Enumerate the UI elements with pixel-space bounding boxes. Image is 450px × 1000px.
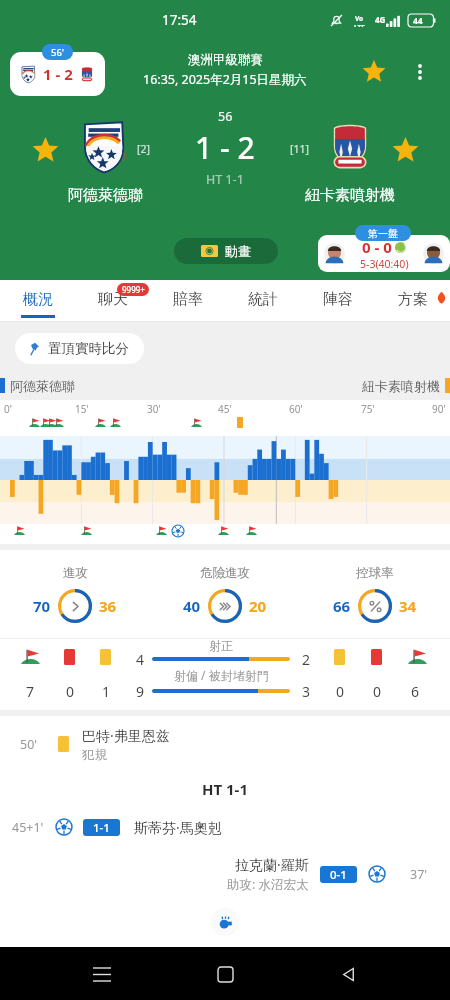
staticText: 4 (136, 650, 145, 669)
button[interactable]: Favourite away team (389, 134, 421, 166)
staticText: 助攻: 水沼宏太 (227, 876, 309, 893)
staticText: 拉克蘭·羅斯 (235, 855, 309, 874)
staticText: HT 1-1 (206, 171, 244, 188)
button[interactable]: 1 - 2 (10, 52, 105, 96)
staticText: 60' (289, 402, 303, 416)
staticText: 0 - 0 (362, 237, 392, 257)
staticText: 0 (373, 682, 382, 701)
staticText: 37' (410, 866, 428, 883)
button[interactable]: 置頂實時比分 (15, 333, 144, 364)
staticText: 阿德萊德聯 (68, 186, 143, 205)
staticText: 16:35, 2025年2月15日星期六 (143, 71, 307, 88)
button[interactable]: 動畫 (174, 238, 278, 264)
staticText: 45' (218, 402, 232, 416)
staticText: 0 (336, 682, 345, 701)
staticText: 概況 (23, 290, 53, 309)
staticText: 2 (302, 650, 311, 669)
button[interactable]: Recent apps (80, 952, 124, 996)
staticText: LTE (354, 23, 365, 27)
button[interactable]: Back (327, 952, 371, 996)
button[interactable]: Home (203, 952, 247, 996)
staticText: 控球率 (356, 565, 394, 581)
staticText: 第一盤 (368, 227, 398, 240)
button[interactable]: 阿德萊德聯 (50, 119, 160, 205)
staticText: 射正 (209, 638, 233, 653)
staticText: 0' (4, 402, 12, 416)
staticText: 9999+ (122, 284, 145, 295)
button[interactable]: Favourite home team (29, 134, 61, 166)
staticText: 聊天 (98, 290, 128, 309)
staticText: 6 (411, 682, 420, 701)
staticText: 70 (33, 596, 51, 616)
staticText: [2] (137, 142, 150, 156)
staticText: 40 (183, 596, 201, 616)
staticText: 紐卡素噴射機 (305, 186, 395, 205)
staticText: 20 (249, 596, 267, 616)
button[interactable]: 紐卡素噴射機 (295, 119, 405, 205)
button[interactable]: 危險進攻 (150, 550, 300, 638)
button[interactable]: Kick off (211, 908, 239, 936)
button[interactable]: 進攻 (0, 550, 150, 638)
staticText: 34 (399, 596, 417, 616)
staticText: 射偏 / 被封堵射門 (174, 667, 269, 683)
staticText: 50' (20, 736, 38, 753)
staticText: 進攻 (63, 565, 88, 581)
staticText: 3 (302, 682, 311, 701)
staticText: 阿德萊德聯 (10, 378, 75, 394)
staticText: 5-3(40:40) (360, 257, 409, 271)
staticText: 置頂實時比分 (48, 340, 129, 357)
staticText: 陣容 (323, 290, 353, 309)
staticText: 0-1 (330, 867, 347, 883)
button[interactable]: 賠率 (150, 280, 225, 322)
button[interactable]: 聊天 (75, 280, 150, 322)
button[interactable]: 拉克蘭·羅斯 (0, 848, 450, 900)
button[interactable]: 45+1' (0, 806, 450, 848)
staticText: 75' (361, 402, 375, 416)
staticText: HT 1-1 (202, 779, 248, 799)
button[interactable]: 概況 (0, 280, 75, 322)
staticText: Vo (355, 14, 364, 23)
staticText: 4G (375, 14, 386, 25)
staticText: 56 (218, 108, 233, 125)
button[interactable]: 控球率 (300, 550, 450, 638)
staticText: 36 (99, 596, 117, 616)
staticText: 澳洲甲級聯賽 (188, 52, 263, 68)
staticText: 56' (51, 46, 65, 59)
staticText: 賠率 (173, 290, 203, 309)
staticText: 0 (66, 682, 75, 701)
button[interactable]: 0 - 0 (318, 235, 450, 272)
staticText: 9 (136, 682, 145, 701)
staticText: 1 (102, 682, 111, 701)
staticText: 統計 (248, 290, 278, 309)
button[interactable]: Favourite (356, 54, 392, 90)
staticText: 15' (75, 402, 89, 416)
staticText: [11] (290, 142, 309, 156)
button[interactable]: 方案 (375, 280, 450, 322)
staticText: 17:54 (162, 11, 197, 29)
staticText: 30' (147, 402, 161, 416)
staticText: 44 (413, 15, 423, 27)
staticText: 方案 (398, 290, 428, 309)
staticText: 紐卡素噴射機 (362, 378, 440, 394)
button[interactable]: More options (402, 54, 438, 90)
staticText: 犯規 (82, 747, 107, 763)
staticText: 66 (333, 596, 351, 616)
staticText: 巴特·弗里恩兹 (82, 726, 170, 745)
staticText: 1 - 2 (195, 127, 255, 168)
staticText: 7 (26, 682, 35, 701)
staticText: 1-1 (93, 820, 110, 836)
staticText: 45+1' (12, 819, 44, 836)
staticText: 危險進攻 (200, 565, 250, 581)
button[interactable]: 統計 (225, 280, 300, 322)
staticText: 斯蒂芬·馬奧剋 (134, 818, 222, 837)
staticText: 1 - 2 (43, 64, 73, 84)
button[interactable]: 陣容 (300, 280, 375, 322)
staticText: 動畫 (225, 243, 251, 259)
button[interactable]: 50' (0, 716, 450, 772)
staticText: 90' (432, 402, 446, 416)
